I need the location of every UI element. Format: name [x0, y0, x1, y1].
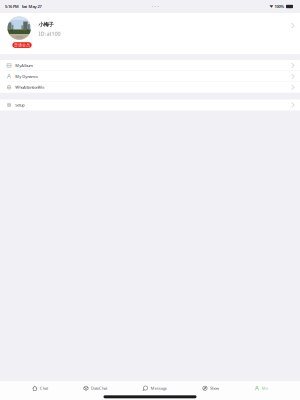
button[interactable]: Setup	[0, 99, 300, 110]
staticText: MyAlbum	[15, 63, 33, 68]
staticText: Show	[210, 386, 219, 391]
staticText: 普通会员	[14, 43, 30, 47]
staticText: Message	[151, 386, 167, 391]
button[interactable]: 普通会员	[0, 13, 300, 54]
staticText: Chat	[40, 386, 48, 391]
staticText: • • •	[151, 4, 159, 9]
staticText: Setup	[15, 102, 24, 108]
staticText: WhoAttentionMe	[15, 85, 44, 90]
staticText: 5:16 PM	[5, 4, 19, 9]
staticText: Sat May 27	[22, 4, 42, 9]
staticText: 小梅子	[38, 21, 53, 28]
button[interactable]: My Dynamic	[0, 71, 300, 82]
staticText: My Dynamic	[15, 74, 38, 79]
button[interactable]: DateChat	[80, 379, 110, 398]
button[interactable]: Show	[199, 379, 222, 398]
button[interactable]: MyAlbum	[0, 60, 300, 71]
button[interactable]: Chat	[29, 379, 51, 398]
staticText: 100%	[275, 4, 285, 9]
staticText: ID: at100	[38, 30, 60, 37]
staticText: Me	[262, 386, 268, 391]
button[interactable]: Me	[252, 379, 271, 398]
button[interactable]: WhoAttentionMe	[0, 82, 300, 93]
button[interactable]: Message	[140, 379, 170, 398]
staticText: DateChat	[91, 386, 107, 391]
